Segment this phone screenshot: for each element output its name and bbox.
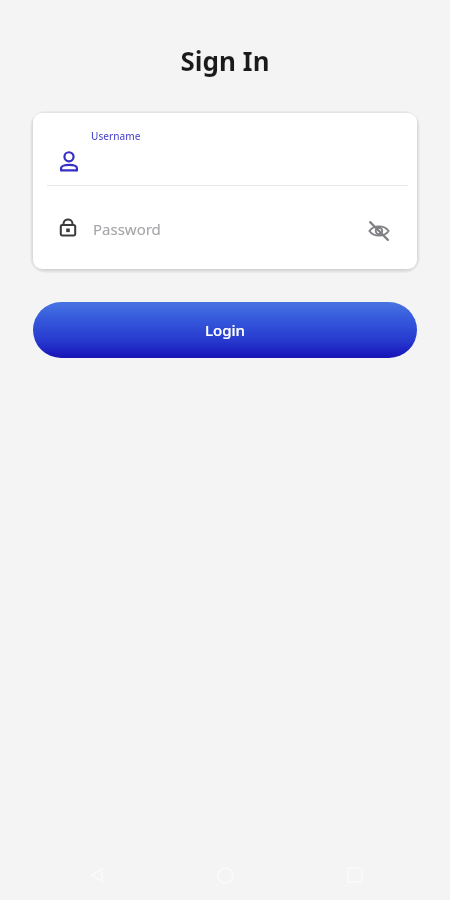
button[interactable]: Login: [33, 302, 417, 358]
other: Username: [56, 149, 82, 175]
staticText: Login: [205, 320, 245, 340]
button[interactable]: Username: [33, 113, 417, 186]
other: Password: [56, 215, 80, 239]
button[interactable]: Show password: [360, 212, 398, 250]
staticText: Username: [91, 129, 141, 143]
staticText: Sign In: [180, 43, 270, 78]
button[interactable]: Password: [33, 186, 417, 269]
staticText: Password: [93, 219, 161, 239]
